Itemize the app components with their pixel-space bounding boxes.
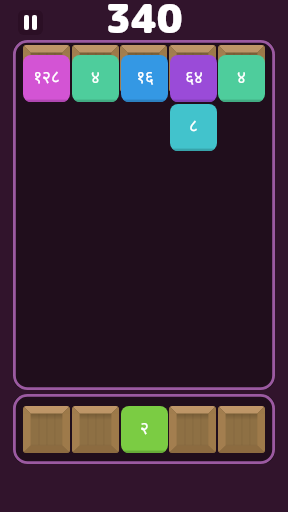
button[interactable]: Empty slot xyxy=(218,406,265,453)
button[interactable]: Empty slot xyxy=(169,406,216,453)
button[interactable]: Empty slot xyxy=(23,45,70,92)
button[interactable]: ८ xyxy=(170,104,217,151)
staticText: २ xyxy=(140,419,149,441)
staticText: ४ xyxy=(91,68,100,90)
button[interactable]: Empty slot xyxy=(169,45,216,92)
button[interactable]: ६४ xyxy=(170,55,217,102)
staticText: १६ xyxy=(136,68,154,90)
staticText: ४ xyxy=(237,68,246,90)
button[interactable]: Empty slot xyxy=(72,45,119,92)
button[interactable]: १२८ xyxy=(23,55,70,102)
button[interactable]: Empty slot xyxy=(218,45,265,92)
button[interactable]: Empty slot xyxy=(72,406,119,453)
button[interactable]: Empty slot xyxy=(120,45,167,92)
staticText: ६४ xyxy=(185,68,203,90)
staticText: 340 xyxy=(105,0,183,45)
button[interactable]: ४ xyxy=(218,55,265,102)
staticText: ८ xyxy=(189,117,198,139)
button[interactable]: ४ xyxy=(72,55,119,102)
button[interactable]: Pause xyxy=(18,10,43,35)
button[interactable]: २ xyxy=(121,406,168,453)
button[interactable]: Empty slot xyxy=(23,406,70,453)
staticText: १२८ xyxy=(33,68,60,90)
button[interactable]: १६ xyxy=(121,55,168,102)
